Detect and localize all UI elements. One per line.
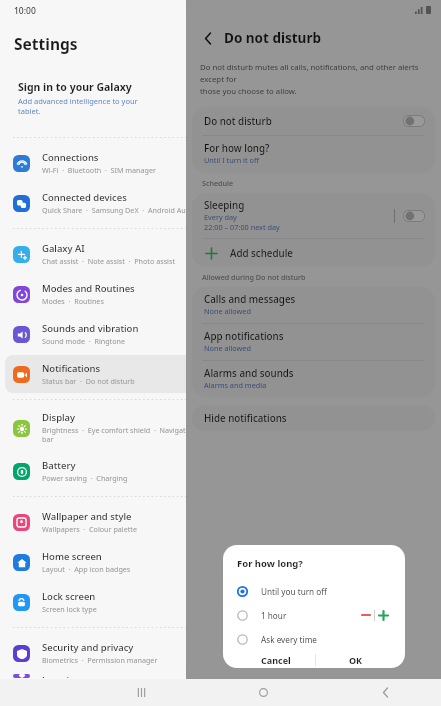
button[interactable]: Add schedule — [192, 239, 435, 267]
button[interactable]: Toggle — [403, 115, 425, 127]
staticText: Hide notifications — [204, 412, 287, 425]
staticText: Layout · App icon badges — [42, 564, 131, 574]
staticText: For how long? — [237, 557, 303, 570]
staticText: Status bar · Do not disturb — [42, 376, 135, 386]
staticText: Do not disturb — [204, 115, 403, 128]
staticText: Alarms and media — [204, 380, 267, 390]
staticText: Battery — [42, 459, 76, 472]
staticText: Schedule — [202, 178, 234, 188]
staticText: Settings — [14, 33, 78, 54]
button[interactable]: Notifications — [5, 355, 436, 393]
button[interactable]: Sounds and vibration — [5, 315, 436, 353]
button[interactable]: Modes and Routines — [5, 275, 436, 313]
staticText: Modes · Routines — [42, 296, 104, 306]
button[interactable]: Increase — [375, 607, 391, 623]
staticText: Power saving · Charging — [42, 473, 128, 483]
staticText: Biometrics · Permission manager — [42, 655, 158, 665]
staticText: Ask every time — [261, 634, 317, 645]
button[interactable]: Cancel — [237, 651, 315, 668]
staticText: Do not disturb — [224, 29, 321, 47]
staticText: Until you turn off — [261, 586, 327, 597]
button[interactable]: Calls and messages — [192, 287, 435, 323]
button[interactable]: Toggle — [403, 210, 425, 222]
button[interactable]: 1 hour — [237, 603, 358, 627]
staticText: None allowed — [204, 343, 251, 353]
button[interactable]: App notifications — [192, 324, 435, 360]
button[interactable]: Security and privacy — [5, 634, 436, 672]
staticText: Add advanced intelligence to your tablet… — [18, 96, 138, 116]
staticText: Screen lock type — [42, 604, 97, 614]
button[interactable]: For how long? — [192, 136, 435, 173]
button[interactable]: Back — [371, 679, 399, 706]
staticText: Wallpapers · Colour palette — [42, 524, 137, 534]
staticText: Home screen — [42, 550, 102, 563]
staticText: Do not disturb mutes all calls, notifica… — [200, 62, 427, 97]
staticText: Sign in to your Galaxy — [18, 80, 132, 94]
staticText: Add schedule — [230, 247, 293, 260]
button[interactable]: OK — [316, 651, 395, 668]
button[interactable]: Wallpaper and style — [5, 503, 436, 541]
staticText: Allowed during Do not disturb — [202, 272, 306, 282]
staticText: OK — [349, 654, 363, 666]
button[interactable]: Battery — [5, 452, 436, 490]
staticText: Location — [42, 674, 81, 678]
staticText: 22:00 – 07:00 next day — [204, 222, 280, 232]
button[interactable]: Home — [249, 679, 277, 706]
staticText: Brightness · Eye comfort shield · Naviga… — [42, 425, 197, 445]
button[interactable]: Ask every time — [237, 627, 395, 651]
button[interactable]: Galaxy AI — [5, 235, 436, 273]
staticText: Security and privacy — [42, 641, 134, 654]
button[interactable]: Sleeping — [192, 193, 435, 238]
button[interactable]: Hide notifications — [192, 405, 435, 431]
staticText: Galaxy AI — [42, 242, 85, 255]
staticText: Sleeping — [204, 199, 245, 212]
button[interactable]: Home screen — [5, 543, 436, 581]
staticText: Modes and Routines — [42, 282, 135, 295]
staticText: None allowed — [204, 306, 251, 316]
button[interactable]: Sign in to your Galaxy — [0, 72, 441, 124]
staticText: 1 hour — [261, 610, 287, 621]
button[interactable]: Location — [5, 674, 436, 678]
staticText: Until I turn it off — [204, 155, 259, 165]
staticText: Sounds and vibration — [42, 322, 139, 335]
staticText: App notifications — [204, 330, 284, 343]
staticText: Wi-Fi · Bluetooth · SIM manager — [42, 165, 157, 175]
button[interactable]: Until you turn off — [237, 579, 395, 603]
staticText: Connections — [42, 151, 99, 164]
staticText: Connected devices — [42, 191, 127, 204]
staticText: Every day — [204, 212, 237, 222]
staticText: Calls and messages — [204, 293, 296, 306]
staticText: Wallpaper and style — [42, 510, 132, 523]
button[interactable]: Connected devices — [5, 184, 436, 222]
button[interactable]: Alarms and sounds — [192, 361, 435, 397]
staticText: Cancel — [261, 654, 291, 666]
button[interactable]: Back — [196, 26, 220, 50]
staticText: Chat assist · Note assist · Photo assist — [42, 256, 175, 266]
staticText: Lock screen — [42, 590, 96, 603]
button[interactable]: Recents — [127, 679, 155, 706]
staticText: Display — [42, 411, 76, 424]
button[interactable]: Lock screen — [5, 583, 436, 621]
staticText: 10:00 — [14, 5, 36, 17]
button[interactable]: Display — [5, 406, 436, 450]
button[interactable]: Do not disturb — [192, 107, 435, 135]
staticText: Sound mode · Ringtone — [42, 336, 126, 346]
staticText: For how long? — [204, 142, 270, 155]
staticText: Alarms and sounds — [204, 367, 294, 380]
button[interactable]: Decrease — [358, 607, 374, 623]
staticText: Quick Share · Samsung DeX · Android Auto — [42, 205, 193, 215]
staticText: Notifications — [42, 362, 101, 375]
button[interactable]: Connections — [5, 144, 436, 182]
